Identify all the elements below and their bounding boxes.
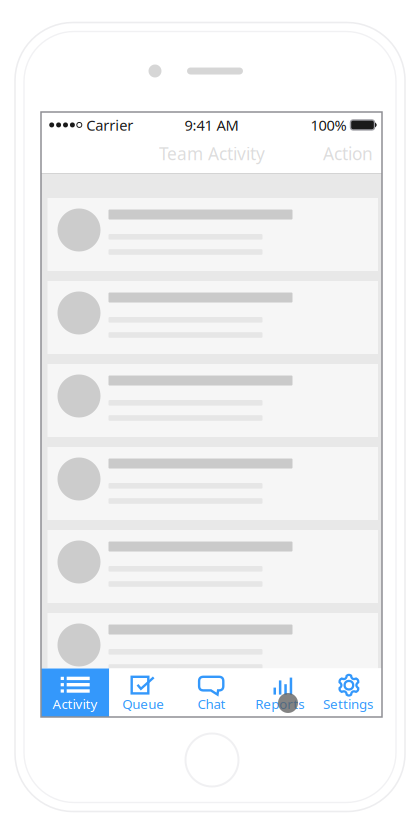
staticText: 9:41 AM [184, 115, 238, 135]
button[interactable] [47, 198, 378, 271]
button[interactable] [47, 364, 378, 437]
staticText: Reports [255, 695, 304, 713]
button[interactable]: Reports [246, 668, 314, 717]
button[interactable] [47, 281, 378, 354]
button[interactable]: Action [323, 136, 382, 171]
button[interactable] [47, 447, 378, 520]
button[interactable]: Queue [109, 668, 177, 717]
button[interactable] [47, 613, 378, 686]
button[interactable] [47, 530, 378, 603]
staticText: Chat [197, 695, 225, 713]
staticText: Settings [323, 695, 373, 713]
button[interactable]: Activity [41, 668, 109, 717]
button[interactable]: Settings [314, 668, 382, 717]
button[interactable]: Chat [177, 668, 246, 717]
staticText: Action [323, 142, 373, 165]
staticText: Activity [53, 695, 98, 713]
staticText: 100% [310, 115, 346, 135]
staticText: Team Activity [159, 142, 265, 165]
staticText: Queue [122, 695, 164, 713]
staticText: Carrier [86, 115, 133, 135]
